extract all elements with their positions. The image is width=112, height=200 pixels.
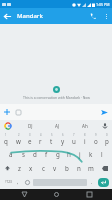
button[interactable]: h bbox=[63, 146, 74, 161]
staticText: AJ bbox=[55, 123, 60, 129]
staticText: Mandark bbox=[17, 12, 43, 20]
staticText: 9 bbox=[95, 133, 97, 137]
staticText: i bbox=[84, 137, 86, 145]
button[interactable]: 4 bbox=[35, 132, 46, 146]
button[interactable]: More options bbox=[100, 10, 112, 22]
button[interactable]: 5 bbox=[46, 132, 57, 146]
button[interactable]: Send bbox=[98, 106, 111, 119]
button[interactable]: Home bbox=[47, 189, 65, 200]
button[interactable]: AJ bbox=[44, 120, 71, 132]
staticText: x bbox=[29, 164, 33, 172]
staticText: 7 bbox=[73, 133, 75, 137]
button[interactable]: Ah bbox=[71, 120, 98, 132]
staticText: f bbox=[45, 150, 48, 158]
staticText: 4 bbox=[40, 133, 42, 137]
staticText: m bbox=[88, 164, 94, 172]
button[interactable]: 3 bbox=[24, 132, 35, 146]
button[interactable]: Emoji bbox=[22, 175, 32, 189]
button[interactable]: x bbox=[25, 161, 37, 175]
button[interactable]: s bbox=[17, 146, 29, 161]
button[interactable]: 6 bbox=[57, 132, 68, 146]
staticText: ?123 bbox=[5, 180, 12, 184]
staticText: 1:05 PM bbox=[96, 2, 110, 7]
staticText: g bbox=[56, 150, 60, 158]
staticText: 2 bbox=[18, 133, 20, 137]
staticText: n bbox=[77, 164, 81, 172]
staticText: s bbox=[22, 150, 25, 158]
button[interactable]: b bbox=[61, 161, 73, 175]
staticText: t bbox=[50, 137, 53, 145]
staticText: 3 bbox=[29, 133, 31, 137]
staticText: v bbox=[53, 164, 57, 172]
button[interactable]: g bbox=[52, 146, 63, 161]
button[interactable]: 2 bbox=[12, 132, 24, 146]
staticText: k bbox=[89, 150, 93, 158]
staticText: a bbox=[9, 150, 13, 158]
button[interactable]: Add attachment bbox=[1, 106, 13, 118]
staticText: l bbox=[101, 150, 103, 158]
staticText: 5 bbox=[51, 133, 53, 137]
button[interactable]: Call bbox=[86, 9, 100, 23]
button[interactable]: a bbox=[5, 146, 17, 161]
staticText: q bbox=[4, 137, 8, 145]
button[interactable]: v bbox=[49, 161, 61, 175]
button[interactable]: j bbox=[74, 146, 85, 161]
staticText: e bbox=[28, 137, 32, 145]
button[interactable]: z bbox=[14, 161, 25, 175]
staticText: d bbox=[33, 150, 37, 158]
button[interactable]: DJ bbox=[16, 120, 44, 132]
button[interactable]: Recent apps bbox=[80, 189, 98, 200]
button[interactable]: Shift bbox=[0, 161, 14, 175]
button[interactable]: Enter bbox=[96, 175, 110, 189]
button[interactable]: . bbox=[88, 175, 96, 189]
staticText: y bbox=[61, 137, 65, 145]
staticText: . bbox=[91, 179, 93, 186]
button[interactable]: 7 bbox=[68, 132, 79, 146]
staticText: c bbox=[42, 164, 45, 172]
staticText: Ah bbox=[82, 123, 88, 129]
button[interactable]: Voice input bbox=[98, 120, 112, 132]
staticText: DJ bbox=[28, 123, 33, 129]
button[interactable]: Google bbox=[0, 120, 16, 132]
staticText: j bbox=[79, 150, 81, 158]
staticText: This is a conversation with Mandark · No… bbox=[23, 95, 90, 100]
staticText: , bbox=[17, 179, 19, 186]
button[interactable]: m bbox=[85, 161, 97, 175]
button[interactable]: l bbox=[96, 146, 107, 161]
staticText: u bbox=[72, 137, 76, 145]
button[interactable]: k bbox=[85, 146, 96, 161]
staticText: r bbox=[39, 137, 42, 145]
button[interactable]: c bbox=[37, 161, 49, 175]
staticText: h bbox=[67, 150, 71, 158]
button[interactable]: 9 bbox=[90, 132, 101, 146]
staticText: b bbox=[65, 164, 69, 172]
button[interactable]: Back bbox=[15, 189, 33, 200]
button[interactable]: f bbox=[41, 146, 52, 161]
button[interactable]: n bbox=[73, 161, 85, 175]
button[interactable]: 8 bbox=[79, 132, 90, 146]
staticText: o bbox=[94, 137, 98, 145]
button[interactable]: 1 bbox=[0, 132, 12, 146]
button[interactable]: Backspace bbox=[97, 161, 112, 175]
staticText: 6 bbox=[62, 133, 64, 137]
staticText: 8 bbox=[84, 133, 86, 137]
staticText: 1 bbox=[5, 133, 7, 137]
button[interactable]: d bbox=[29, 146, 41, 161]
staticText: w bbox=[16, 137, 21, 145]
staticText: z bbox=[18, 164, 21, 172]
staticText: 0 bbox=[106, 133, 108, 137]
button[interactable]: 0 bbox=[101, 132, 112, 146]
button[interactable]: , bbox=[14, 175, 22, 189]
button[interactable]: Back bbox=[0, 9, 14, 23]
staticText: p bbox=[105, 137, 109, 145]
button[interactable]: ?123 bbox=[2, 175, 14, 189]
button[interactable]: Sticker bbox=[13, 107, 24, 118]
